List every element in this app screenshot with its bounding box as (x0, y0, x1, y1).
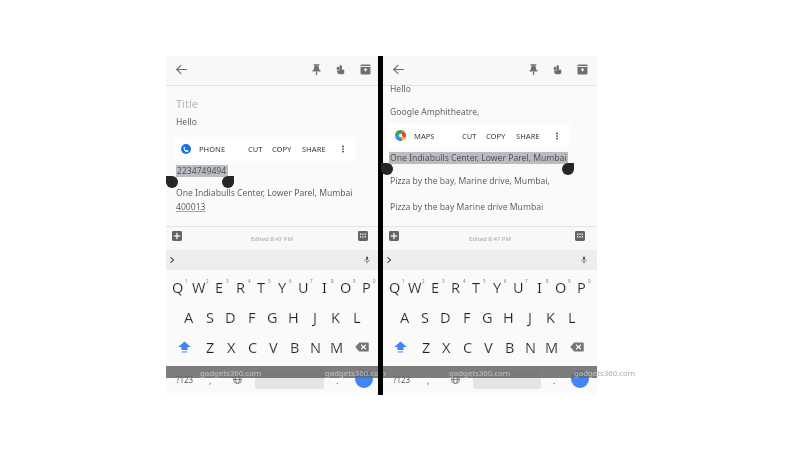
button[interactable]: Reminder (546, 58, 568, 80)
staticText: CUT (462, 131, 477, 141)
button[interactable]: Y (487, 271, 508, 302)
button[interactable]: V (478, 332, 499, 362)
button[interactable]: Pin (305, 58, 327, 80)
staticText: Google Amphitheatre, (390, 106, 480, 118)
button[interactable]: Shift (385, 332, 416, 362)
button[interactable]: Pin (522, 58, 544, 80)
button[interactable]: H (498, 302, 519, 332)
button[interactable]: CUT (244, 137, 266, 161)
button[interactable]: I (314, 271, 335, 302)
staticText: 9 (353, 278, 356, 284)
button[interactable]: V (263, 332, 284, 362)
button[interactable]: N (520, 332, 541, 362)
button[interactable]: S (199, 302, 220, 332)
button[interactable]: Back (387, 58, 409, 80)
button[interactable]: ?123 (385, 366, 419, 393)
button[interactable]: SHARE (299, 137, 329, 161)
button[interactable]: Space (255, 370, 324, 389)
button[interactable]: U (293, 271, 314, 302)
button[interactable]: Z (200, 332, 221, 362)
button[interactable]: O (550, 271, 571, 302)
button[interactable]: J (519, 302, 540, 332)
button[interactable]: G (262, 302, 283, 332)
button[interactable]: K (540, 302, 561, 332)
button[interactable]: R (230, 271, 251, 302)
button[interactable]: SHARE (513, 124, 543, 147)
button[interactable]: Q (168, 271, 188, 302)
button[interactable]: J (304, 302, 325, 332)
button[interactable]: A (178, 302, 199, 332)
button[interactable]: P (571, 271, 592, 302)
button[interactable]: F (456, 302, 477, 332)
button[interactable]: I (529, 271, 550, 302)
button[interactable]: Enter (355, 370, 373, 388)
button[interactable]: CUT (458, 124, 480, 147)
button[interactable]: Expand toolbar (383, 254, 395, 266)
button[interactable]: COPY (483, 124, 509, 147)
button[interactable]: , (419, 366, 437, 393)
button[interactable]: E (209, 271, 230, 302)
button[interactable]: B (284, 332, 305, 362)
button[interactable]: Change language (219, 366, 255, 393)
button[interactable]: U (508, 271, 529, 302)
button[interactable]: X (436, 332, 457, 362)
button[interactable]: Archive (354, 58, 376, 80)
button[interactable]: W (188, 271, 209, 302)
button[interactable]: Reminder (329, 58, 351, 80)
button[interactable]: O (335, 271, 356, 302)
button[interactable]: Voice input (578, 254, 590, 266)
button[interactable]: M (326, 332, 347, 362)
button[interactable]: Enter (571, 370, 589, 388)
button[interactable]: . (541, 366, 567, 393)
button[interactable]: ?123 (168, 366, 201, 393)
button[interactable]: T (466, 271, 487, 302)
button[interactable]: COPY (269, 137, 295, 161)
staticText: Y (493, 277, 502, 297)
button[interactable]: More options (549, 124, 565, 147)
button[interactable]: K (325, 302, 346, 332)
button[interactable]: More (572, 228, 588, 244)
button[interactable]: Backspace (562, 332, 592, 362)
button[interactable]: B (499, 332, 520, 362)
button[interactable]: Z (416, 332, 436, 362)
button[interactable]: C (242, 332, 263, 362)
staticText: A (184, 307, 194, 327)
button[interactable]: D (220, 302, 241, 332)
button[interactable]: , (201, 366, 219, 393)
staticText: 8 (331, 278, 334, 284)
button[interactable]: Backspace (347, 332, 377, 362)
button[interactable]: More options (335, 137, 351, 161)
button[interactable]: A (395, 302, 415, 332)
button[interactable]: Archive (571, 58, 593, 80)
button[interactable]: More (355, 228, 371, 244)
button[interactable]: Expand toolbar (166, 254, 178, 266)
button[interactable]: W (405, 271, 425, 302)
button[interactable]: D (435, 302, 456, 332)
button[interactable]: C (457, 332, 478, 362)
button[interactable]: . (324, 366, 351, 393)
button[interactable]: Change language (437, 366, 473, 393)
button[interactable]: PHONE (181, 137, 226, 161)
button[interactable]: G (477, 302, 498, 332)
button[interactable]: N (305, 332, 326, 362)
button[interactable]: R (445, 271, 466, 302)
button[interactable]: MAPS (395, 124, 435, 147)
button[interactable]: T (251, 271, 272, 302)
button[interactable]: L (346, 302, 367, 332)
button[interactable]: Q (385, 271, 405, 302)
button[interactable]: Voice input (361, 254, 373, 266)
button[interactable]: X (221, 332, 242, 362)
button[interactable]: Y (272, 271, 293, 302)
button[interactable]: F (241, 302, 262, 332)
button[interactable]: Add (386, 228, 402, 244)
button[interactable]: P (356, 271, 377, 302)
button[interactable]: L (561, 302, 582, 332)
button[interactable]: E (425, 271, 445, 302)
button[interactable]: Shift (168, 332, 200, 362)
button[interactable]: Space (473, 370, 541, 389)
button[interactable]: Back (170, 58, 192, 80)
button[interactable]: M (541, 332, 562, 362)
button[interactable]: H (283, 302, 304, 332)
button[interactable]: S (415, 302, 435, 332)
button[interactable]: Add (169, 228, 185, 244)
